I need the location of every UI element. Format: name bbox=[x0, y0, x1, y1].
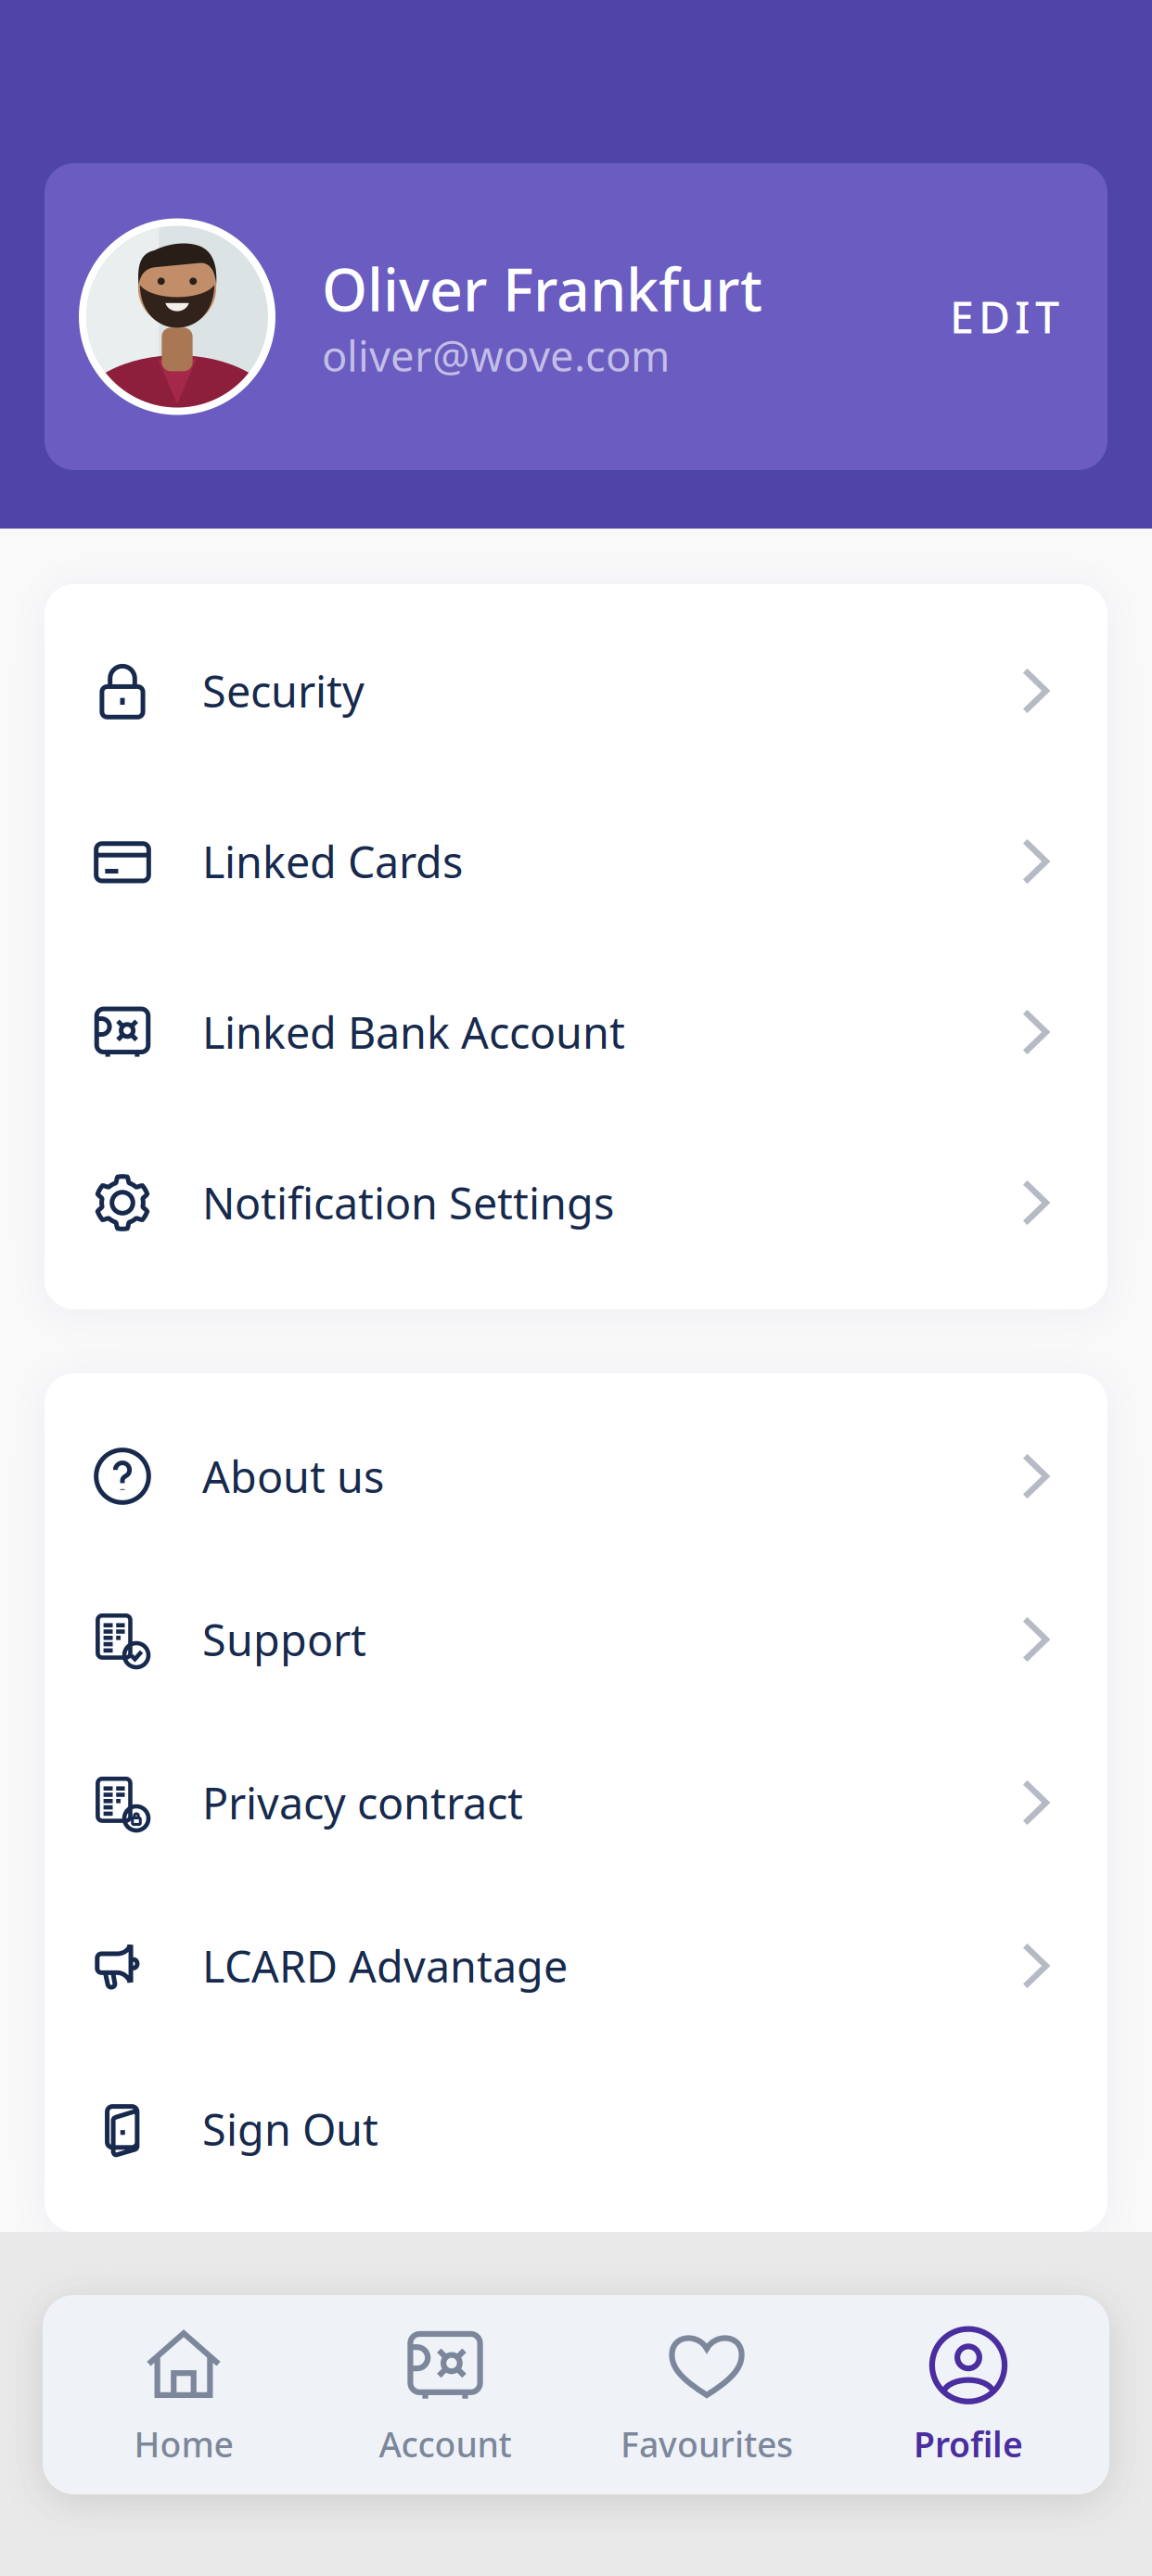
staticText: EDIT bbox=[950, 288, 1059, 345]
button[interactable]: Favourites bbox=[576, 2323, 838, 2467]
staticText: LCARD Advantage bbox=[202, 1937, 568, 1995]
staticText: Support bbox=[202, 1611, 366, 1668]
button[interactable]: About us bbox=[45, 1395, 1107, 1558]
button[interactable]: Linked Cards bbox=[45, 776, 1107, 947]
button[interactable]: Privacy contract bbox=[45, 1721, 1107, 1884]
button[interactable]: Notification Settings bbox=[45, 1117, 1107, 1288]
staticText: About us bbox=[202, 1447, 384, 1505]
button[interactable]: Support bbox=[45, 1558, 1107, 1721]
staticText: Linked Cards bbox=[202, 833, 463, 890]
button[interactable]: LCARD Advantage bbox=[45, 1884, 1107, 2047]
button[interactable]: Linked Bank Account bbox=[45, 947, 1107, 1117]
button[interactable]: Security bbox=[45, 606, 1107, 776]
staticText: Account bbox=[379, 2421, 512, 2467]
staticText: Favourites bbox=[621, 2421, 793, 2467]
button[interactable]: Home bbox=[53, 2323, 314, 2467]
staticText: Profile bbox=[914, 2421, 1023, 2467]
staticText: Oliver Frankfurt bbox=[322, 250, 762, 327]
staticText: Linked Bank Account bbox=[202, 1003, 625, 1061]
staticText: Privacy contract bbox=[202, 1774, 523, 1831]
button[interactable]: Profile bbox=[838, 2323, 1099, 2467]
button[interactable]: EDIT bbox=[941, 291, 1069, 343]
button[interactable]: Sign Out bbox=[45, 2047, 1107, 2211]
button[interactable]: Account bbox=[314, 2323, 576, 2467]
staticText: Security bbox=[202, 662, 365, 720]
staticText: Home bbox=[134, 2421, 233, 2467]
staticText: Notification Settings bbox=[202, 1174, 614, 1231]
staticText: Sign Out bbox=[202, 2100, 378, 2158]
staticText: oliver@wove.com bbox=[322, 327, 670, 383]
